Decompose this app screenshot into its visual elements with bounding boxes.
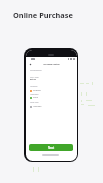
staticText: Licenses xyxy=(30,85,38,88)
button[interactable]: Back xyxy=(29,63,32,66)
staticText: Organization xyxy=(30,69,42,72)
staticText: Online Purchase xyxy=(13,10,73,20)
staticText: Unknown xyxy=(30,93,39,96)
staticText: Purchase Control xyxy=(26,63,77,66)
staticText: Ongoing xyxy=(33,89,41,92)
staticText: Org. Type xyxy=(30,76,39,79)
button[interactable]: Next xyxy=(29,144,73,151)
staticText: Unknown xyxy=(33,105,42,108)
staticText: Retail xyxy=(30,78,37,81)
staticText: Good xyxy=(33,96,38,99)
staticText: Total MSP xyxy=(30,101,39,104)
staticText: Next xyxy=(48,146,55,150)
